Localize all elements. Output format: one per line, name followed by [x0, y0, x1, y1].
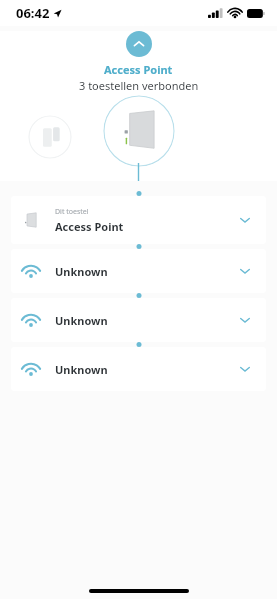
staticText: Unknown [55, 362, 108, 377]
button[interactable]: Other device [28, 115, 72, 159]
staticText: Unknown [55, 264, 108, 279]
staticText: 06:42 [16, 4, 50, 22]
button[interactable]: Unknown [11, 298, 266, 342]
button[interactable]: Expand [234, 260, 256, 282]
staticText: 3 toestellen verbonden [79, 78, 199, 93]
button[interactable]: Expand [234, 358, 256, 380]
staticText: Access Point [55, 219, 124, 234]
button[interactable]: Collapse [126, 31, 152, 57]
button[interactable]: Unknown [11, 249, 266, 293]
button[interactable]: Dit toestel [11, 196, 266, 244]
button[interactable]: Expand [234, 309, 256, 331]
button[interactable]: Unknown [11, 347, 266, 391]
staticText: Access Point [104, 62, 173, 77]
button[interactable]: Expand [234, 209, 256, 231]
staticText: Dit toestel [55, 207, 89, 217]
button[interactable]: Access Point device [103, 95, 175, 167]
staticText: Unknown [55, 313, 108, 328]
